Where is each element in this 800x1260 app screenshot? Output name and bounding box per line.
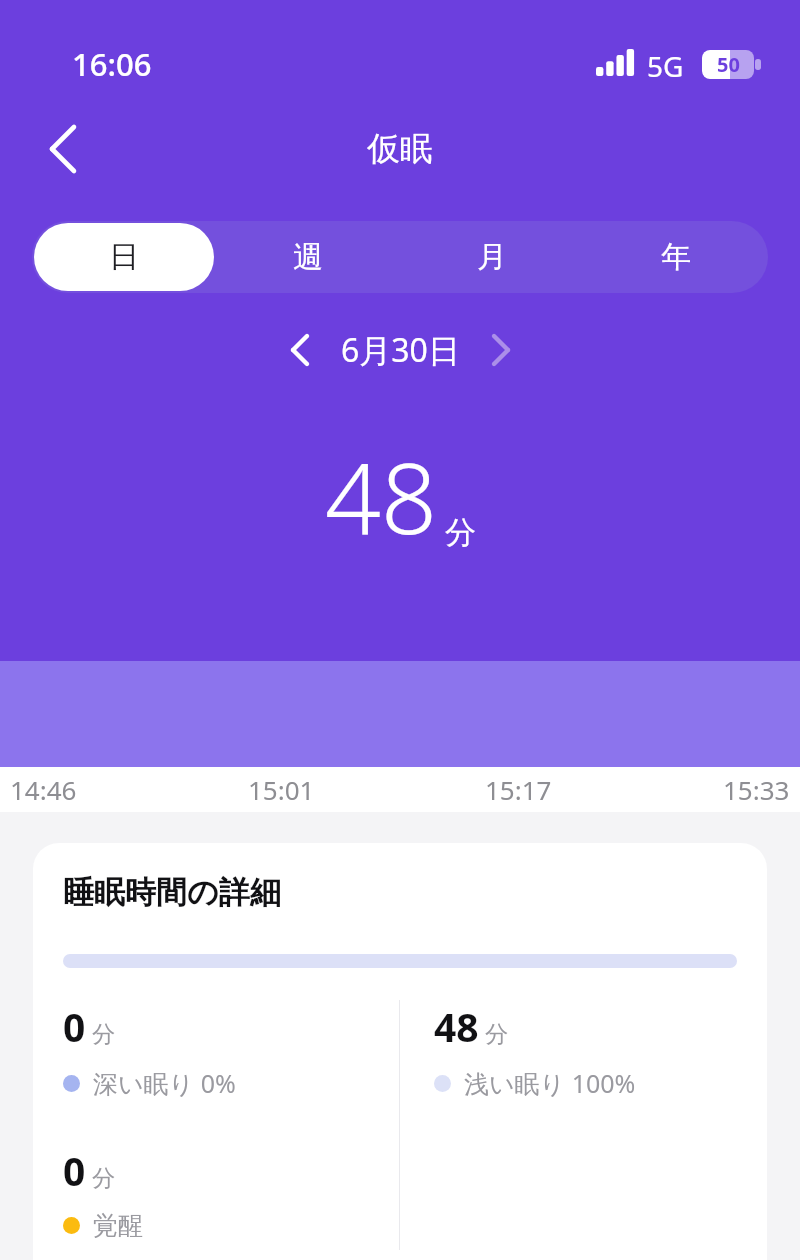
button[interactable]: Next day bbox=[474, 323, 528, 377]
staticText: 睡眠時間の詳細 bbox=[63, 873, 281, 912]
staticText: 16:06 bbox=[72, 43, 152, 85]
staticText: 0 bbox=[63, 1144, 86, 1197]
button[interactable]: Previous day bbox=[273, 323, 327, 377]
staticText: 15:01 bbox=[248, 772, 315, 807]
staticText: 月 bbox=[477, 238, 507, 276]
staticText: 48 bbox=[325, 429, 437, 562]
staticText: 14:46 bbox=[10, 772, 77, 807]
staticText: 分 bbox=[92, 1164, 115, 1193]
staticText: 分 bbox=[485, 1020, 508, 1049]
staticText: 仮眠 bbox=[367, 128, 433, 170]
staticText: 分 bbox=[92, 1020, 115, 1049]
staticText: 50 bbox=[717, 51, 740, 78]
button[interactable]: 日 bbox=[34, 223, 214, 291]
staticText: 覚醒 bbox=[93, 1210, 143, 1241]
staticText: 15:17 bbox=[485, 772, 552, 807]
staticText: 48 bbox=[434, 1000, 479, 1053]
staticText: 5G bbox=[647, 47, 684, 85]
staticText: 日 bbox=[109, 238, 139, 276]
button[interactable]: 月 bbox=[402, 223, 582, 291]
button[interactable]: 週 bbox=[218, 223, 398, 291]
staticText: 15:33 bbox=[723, 772, 790, 807]
staticText: 0 bbox=[63, 1000, 86, 1053]
staticText: 年 bbox=[661, 238, 691, 276]
staticText: 週 bbox=[293, 238, 323, 276]
staticText: 6月30日 bbox=[341, 328, 460, 372]
staticText: 分 bbox=[445, 513, 476, 552]
button[interactable]: 年 bbox=[586, 223, 766, 291]
button[interactable]: 睡眠時間の詳細 bbox=[33, 843, 767, 1260]
staticText: 深い眠り 0% bbox=[93, 1066, 236, 1100]
staticText: 浅い眠り 100% bbox=[464, 1066, 636, 1100]
button[interactable]: Back bbox=[31, 117, 95, 181]
